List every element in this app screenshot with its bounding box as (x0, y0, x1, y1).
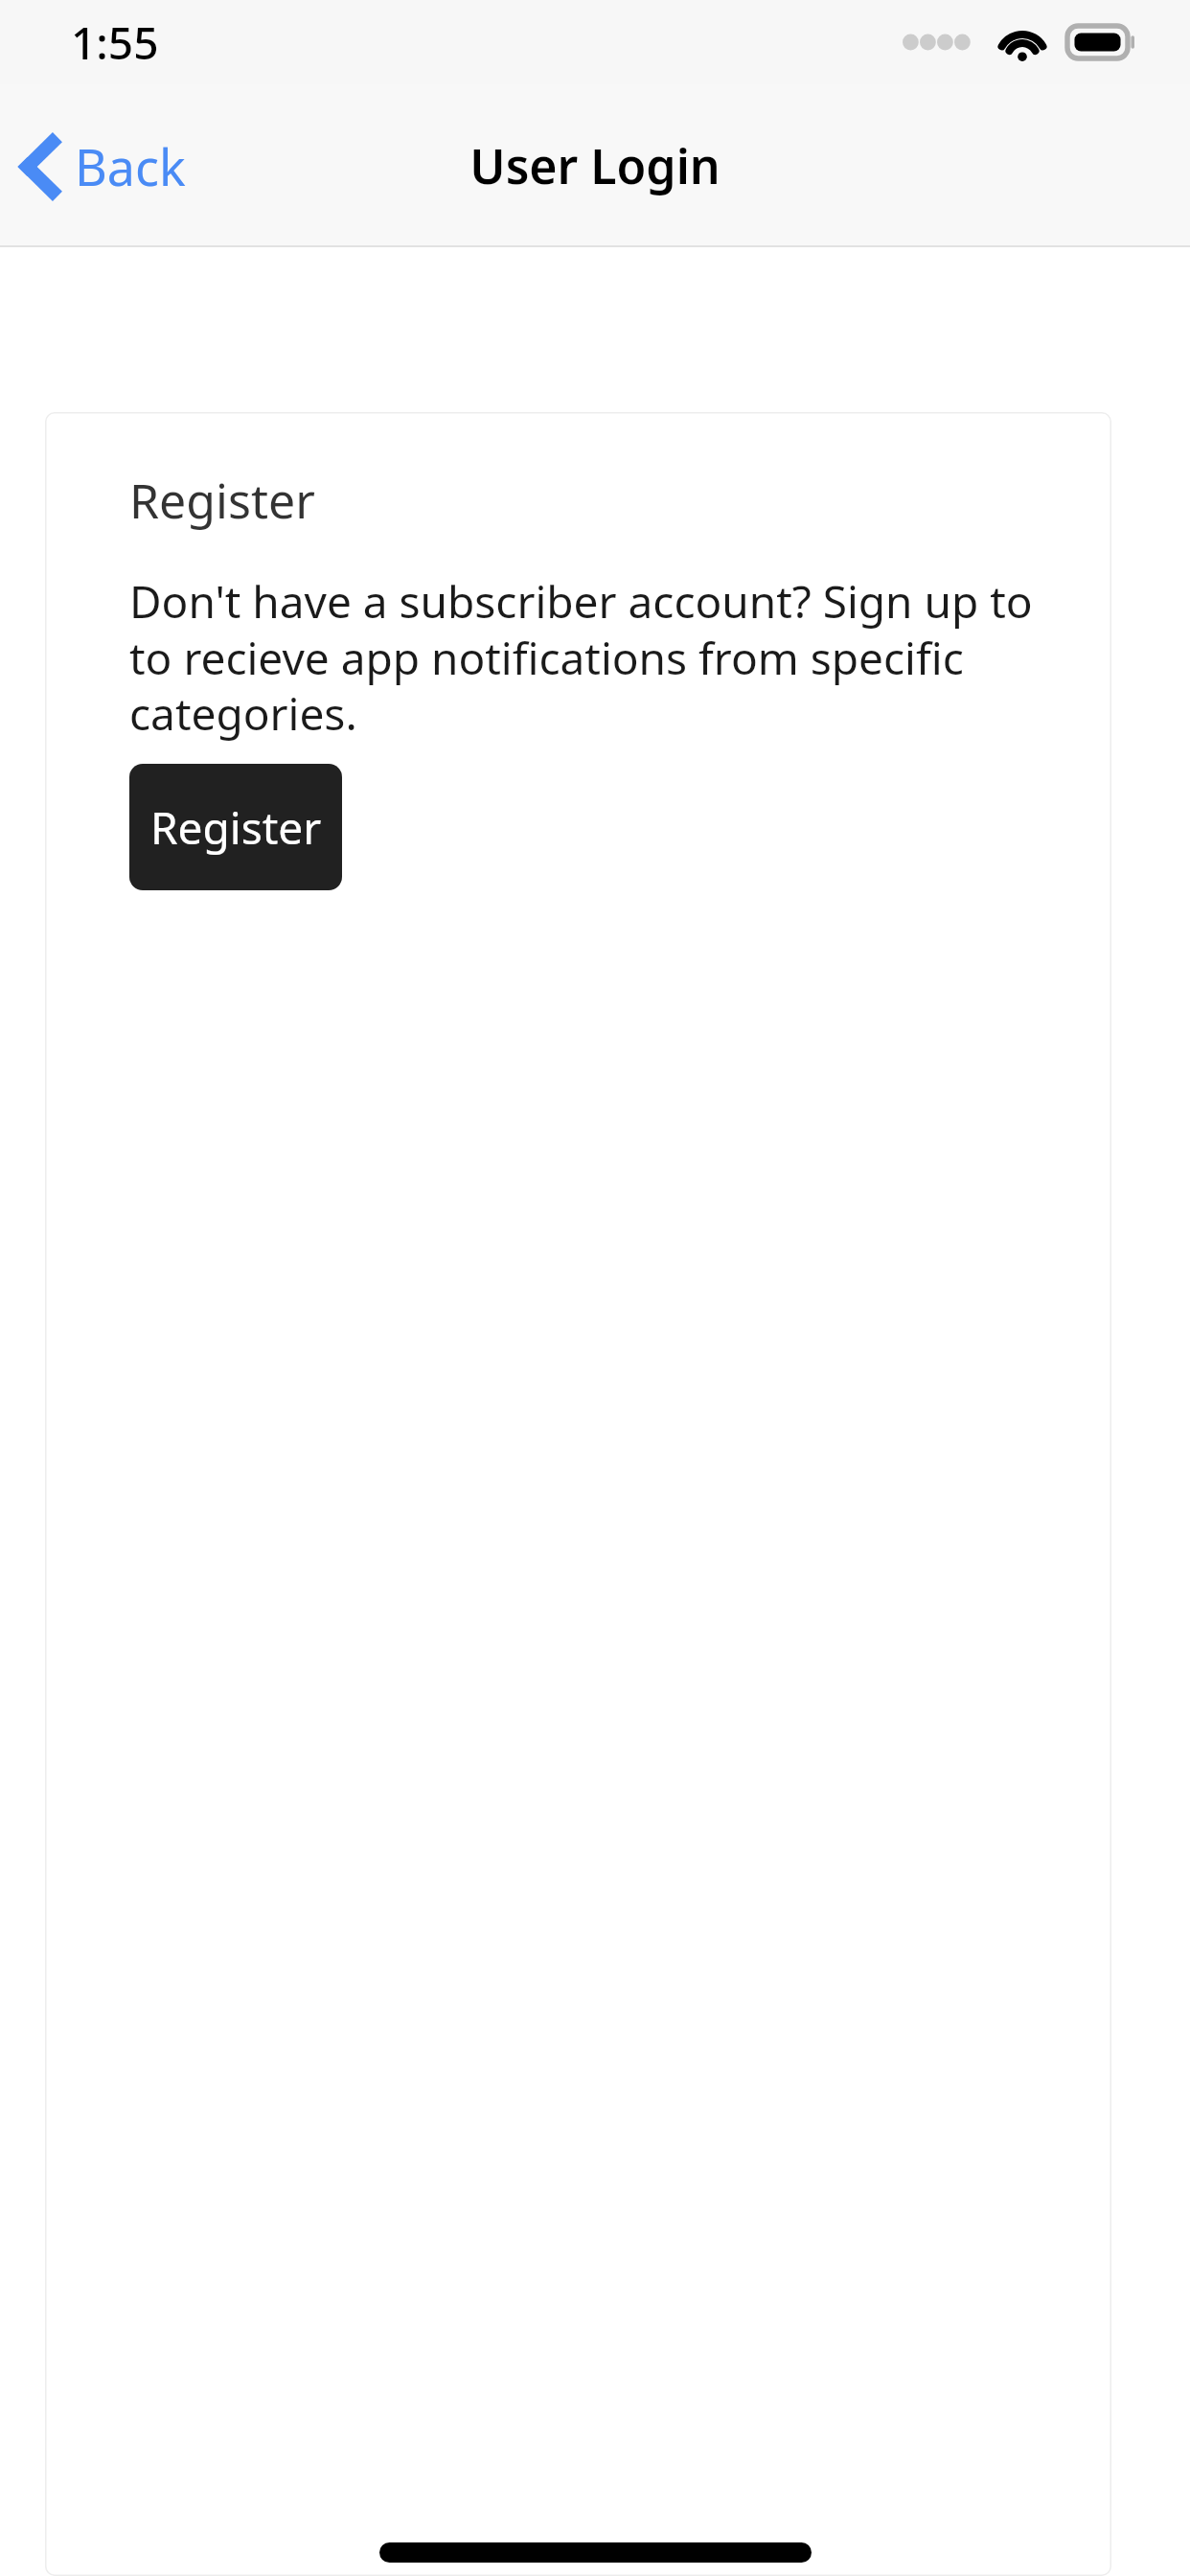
staticText: User Login (469, 133, 721, 198)
staticText: 1:55 (71, 12, 159, 73)
staticText: Register (129, 468, 315, 533)
staticText: Back (75, 132, 186, 200)
staticText: Don't have a subscriber account? Sign up… (129, 571, 1073, 743)
button[interactable]: Register (129, 764, 342, 890)
button[interactable]: Back (0, 117, 205, 216)
staticText: Register (150, 797, 322, 858)
